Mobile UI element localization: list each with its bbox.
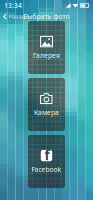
staticText: Назад: [9, 13, 25, 20]
staticText: Галерея: [33, 51, 60, 60]
staticText: 13:34: [4, 1, 22, 10]
staticText: f: [45, 146, 50, 164]
button[interactable]: Камера: [28, 78, 65, 131]
button[interactable]: Назад: [0, 11, 28, 22]
staticText: Выбрать фото: [23, 12, 69, 21]
staticText: Facebook: [31, 165, 61, 174]
staticText: Камера: [34, 108, 59, 117]
button[interactable]: Галерея: [28, 21, 65, 74]
button[interactable]: f: [28, 135, 65, 188]
